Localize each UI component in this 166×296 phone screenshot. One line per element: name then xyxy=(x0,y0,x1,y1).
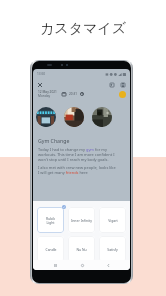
staticText: 13:50 xyxy=(37,72,46,76)
staticText: I also met with crew new people, looks l… xyxy=(38,165,117,175)
button[interactable]: Recents xyxy=(50,260,60,270)
button[interactable]: Back xyxy=(103,260,113,270)
button[interactable]: Satisfy xyxy=(99,236,126,262)
button[interactable]: Add image xyxy=(108,81,116,89)
button[interactable]: Photo xyxy=(92,107,112,127)
button[interactable]: Nu Nu xyxy=(68,236,95,262)
button[interactable]: Mood xyxy=(119,91,126,98)
button[interactable]: Save xyxy=(119,81,127,89)
button[interactable]: Candle xyxy=(37,236,64,262)
staticText: Candle xyxy=(45,247,57,252)
button[interactable]: Home xyxy=(77,260,87,270)
button[interactable]: Rubik Light xyxy=(37,207,64,233)
staticText: Today I had to change my gym for my work… xyxy=(38,147,117,162)
staticText: Nu Nu xyxy=(76,247,87,252)
staticText: Vigart xyxy=(108,218,118,223)
button[interactable]: Photo xyxy=(64,107,84,127)
button[interactable]: Photo xyxy=(36,107,56,127)
staticText: 12 May 2021 xyxy=(38,90,57,94)
button[interactable]: Inner Infinity xyxy=(68,207,95,233)
staticText: Satisfy xyxy=(107,247,118,252)
staticText: 20:31 xyxy=(69,92,78,96)
staticText: Inner Infinity xyxy=(71,218,92,223)
staticText: Rubik Light xyxy=(46,216,55,225)
button[interactable]: Vigart xyxy=(99,207,126,233)
button[interactable]: Close xyxy=(36,81,44,89)
staticText: Monday xyxy=(38,94,51,98)
staticText: Gym Change xyxy=(38,137,70,144)
staticText: カスタマイズ xyxy=(40,20,126,38)
